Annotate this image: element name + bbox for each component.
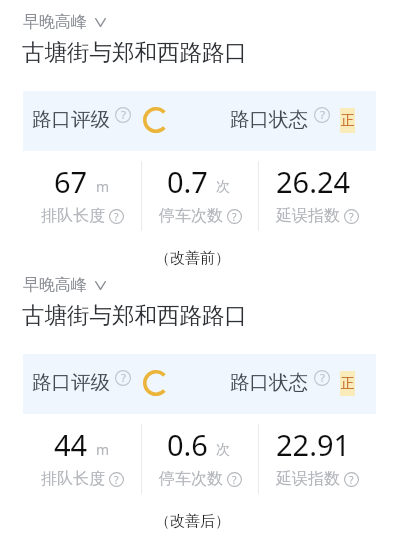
button[interactable]: 路口状态 说明 (314, 370, 330, 386)
staticText: 路口状态 (230, 107, 308, 132)
staticText: ? (114, 473, 119, 487)
staticText: ? (121, 107, 126, 123)
staticText: ? (349, 210, 354, 224)
button[interactable]: 路口评级 说明 (115, 107, 131, 123)
staticText: m (96, 177, 110, 196)
button[interactable]: 0.7 (141, 162, 259, 226)
staticText: 路口评级 (32, 370, 110, 395)
staticText: （改善前） (0, 249, 385, 268)
staticText: 0.7 (167, 162, 208, 201)
staticText: ? (320, 107, 325, 123)
staticText: 早晚高峰 (23, 275, 87, 295)
staticText: 排队长度 (41, 469, 105, 489)
staticText: 0.6 (167, 425, 208, 464)
staticText: 早晚高峰 (23, 12, 87, 32)
button[interactable]: 排队长度 说明 (109, 472, 124, 487)
button[interactable]: 早晚高峰 (23, 12, 106, 32)
button[interactable]: 44 (23, 425, 141, 489)
staticText: m (96, 440, 110, 459)
staticText: 延误指数 (276, 206, 340, 226)
button[interactable]: 停车次数 说明 (227, 472, 242, 487)
staticText: 路口状态 (230, 370, 308, 395)
staticText: 正 (341, 112, 355, 130)
staticText: 26.24 (276, 162, 351, 201)
staticText: ? (320, 370, 325, 386)
staticText: 正 (341, 375, 355, 393)
button[interactable]: 路口状态 说明 (314, 107, 330, 123)
button[interactable]: 0.6 (141, 425, 259, 489)
button[interactable]: 路口评级 C (143, 107, 169, 133)
staticText: 停车次数 (159, 469, 223, 489)
button[interactable]: 路口评级 C (143, 370, 169, 396)
button[interactable]: 古塘街与郑和西路路口 (22, 38, 247, 66)
staticText: 44 (54, 425, 88, 464)
staticText: ? (114, 210, 119, 224)
staticText: ? (349, 473, 354, 487)
staticText: 延误指数 (276, 469, 340, 489)
staticText: 次 (216, 178, 230, 196)
staticText: 路口评级 (32, 107, 110, 132)
button[interactable]: 早晚高峰 (23, 275, 106, 295)
button[interactable]: 26.24 (258, 162, 376, 226)
staticText: 停车次数 (159, 206, 223, 226)
button[interactable]: 路口状态 (230, 107, 330, 132)
button[interactable]: 停车次数 说明 (227, 209, 242, 224)
button[interactable]: 正 (340, 108, 355, 133)
staticText: ? (121, 370, 126, 386)
staticText: 排队长度 (41, 206, 105, 226)
staticText: ? (232, 473, 237, 487)
button[interactable]: 67 (23, 162, 141, 226)
button[interactable]: 延误指数 说明 (344, 209, 359, 224)
staticText: （改善后） (0, 512, 385, 531)
button[interactable]: 路口评级 (32, 107, 131, 132)
button[interactable]: 古塘街与郑和西路路口 (22, 301, 247, 329)
staticText: ? (232, 210, 237, 224)
button[interactable]: 路口评级 说明 (115, 370, 131, 386)
staticText: 次 (216, 441, 230, 459)
button[interactable]: 正 (340, 371, 355, 396)
button[interactable]: 22.91 (258, 425, 376, 489)
button[interactable]: 路口评级 (32, 370, 131, 395)
button[interactable]: 路口状态 (230, 370, 330, 395)
staticText: 67 (54, 162, 88, 201)
button[interactable]: 排队长度 说明 (109, 209, 124, 224)
staticText: 22.91 (276, 425, 351, 464)
button[interactable]: 延误指数 说明 (344, 472, 359, 487)
